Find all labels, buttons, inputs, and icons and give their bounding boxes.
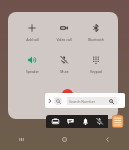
button[interactable]: End call: [62, 89, 73, 100]
staticText: Add call: [26, 37, 39, 42]
button[interactable]: Back: [86, 128, 129, 150]
button[interactable]: Assistant: [54, 97, 62, 105]
button[interactable]: Home: [43, 128, 86, 150]
staticText: Bluetooth: [88, 37, 104, 42]
button[interactable]: Speaker: [16, 51, 48, 73]
staticText: Speaker: [26, 69, 39, 74]
button[interactable]: Gallery: [49, 115, 61, 127]
button[interactable]: Notifications: [79, 115, 91, 127]
button[interactable]: Search Number: [67, 97, 117, 105]
button[interactable]: Bluetooth: [80, 19, 112, 41]
button[interactable]: Recents: [0, 128, 43, 150]
staticText: Search Number: [69, 99, 96, 104]
staticText: Keypad: [90, 69, 102, 74]
button[interactable]: Add call: [16, 19, 48, 41]
staticText: Video call: [56, 37, 72, 42]
staticText: Mute: [60, 69, 69, 74]
button[interactable]: Clipboard: [109, 113, 126, 129]
button[interactable]: Video call: [48, 19, 80, 41]
button[interactable]: Expand: [45, 93, 54, 108]
button[interactable]: Keypad: [80, 51, 112, 73]
button[interactable]: Messages: [64, 115, 76, 127]
button[interactable]: Mute: [48, 51, 80, 73]
button[interactable]: Microphone off: [93, 115, 105, 127]
